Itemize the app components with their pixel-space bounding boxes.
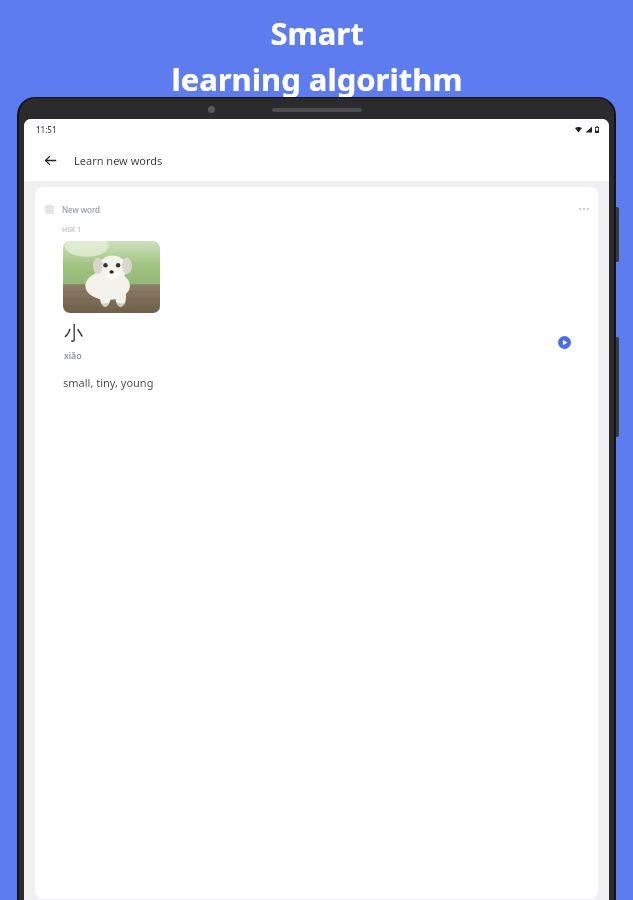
staticText: 11:51 — [36, 124, 57, 135]
staticText: small, tiny, young — [63, 375, 154, 390]
staticText: New word — [62, 204, 100, 215]
staticText: learning algorithm — [171, 58, 463, 100]
button[interactable]: More options — [570, 195, 598, 223]
button[interactable]: Play pronunciation — [552, 330, 576, 354]
button[interactable]: Back — [34, 144, 66, 176]
staticText: Smart — [270, 12, 364, 54]
staticText: HSK 1 — [62, 225, 82, 235]
staticText: xiǎo — [64, 349, 82, 361]
staticText: 小 — [64, 322, 83, 346]
button[interactable]: Select word — [45, 205, 54, 214]
staticText: Learn new words — [74, 153, 163, 168]
